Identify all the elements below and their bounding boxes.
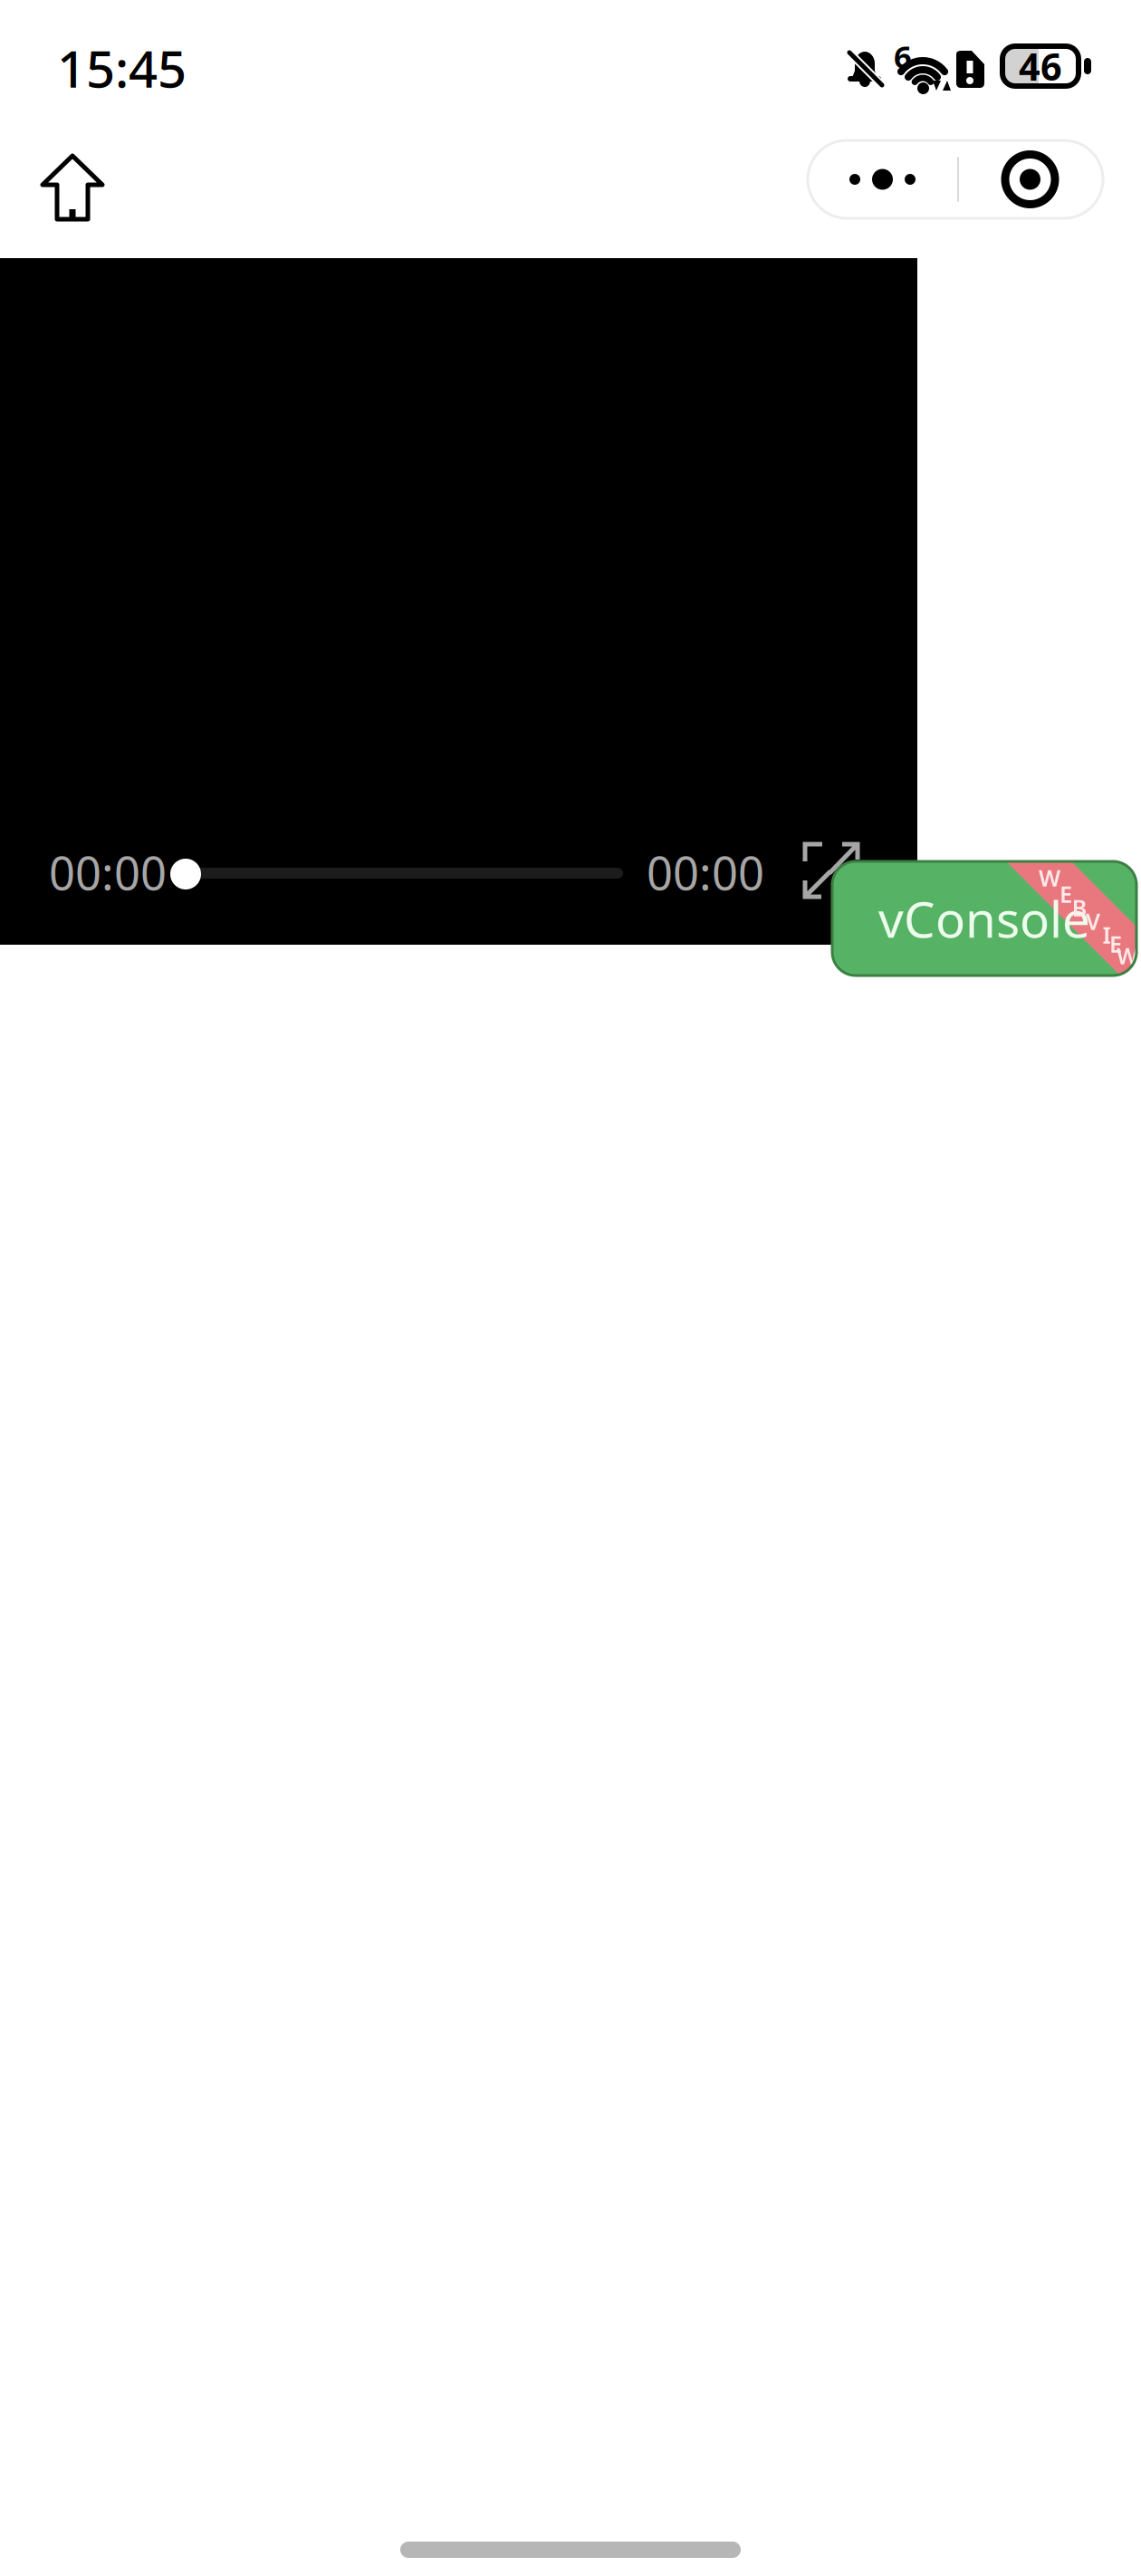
button[interactable]: Close mini program	[957, 140, 1103, 218]
button[interactable]: More	[808, 140, 957, 218]
staticText: E	[1059, 879, 1072, 909]
staticText: W	[1117, 940, 1138, 971]
button[interactable]: vConsole	[832, 861, 1136, 976]
staticText: 00:00	[49, 842, 167, 903]
staticText: I	[1103, 920, 1111, 950]
button[interactable]: Home	[39, 152, 106, 223]
staticText: vConsole	[878, 886, 1090, 951]
staticText: E	[1109, 929, 1122, 959]
staticText: W	[1039, 862, 1060, 893]
staticText: B	[1072, 892, 1087, 923]
staticText: V	[1086, 906, 1100, 936]
staticText: 46	[1019, 41, 1062, 91]
staticText: 00:00	[647, 842, 764, 903]
staticText: 15:45	[57, 34, 187, 102]
button[interactable]: Full screen	[801, 841, 859, 900]
staticText: 6	[894, 35, 912, 77]
